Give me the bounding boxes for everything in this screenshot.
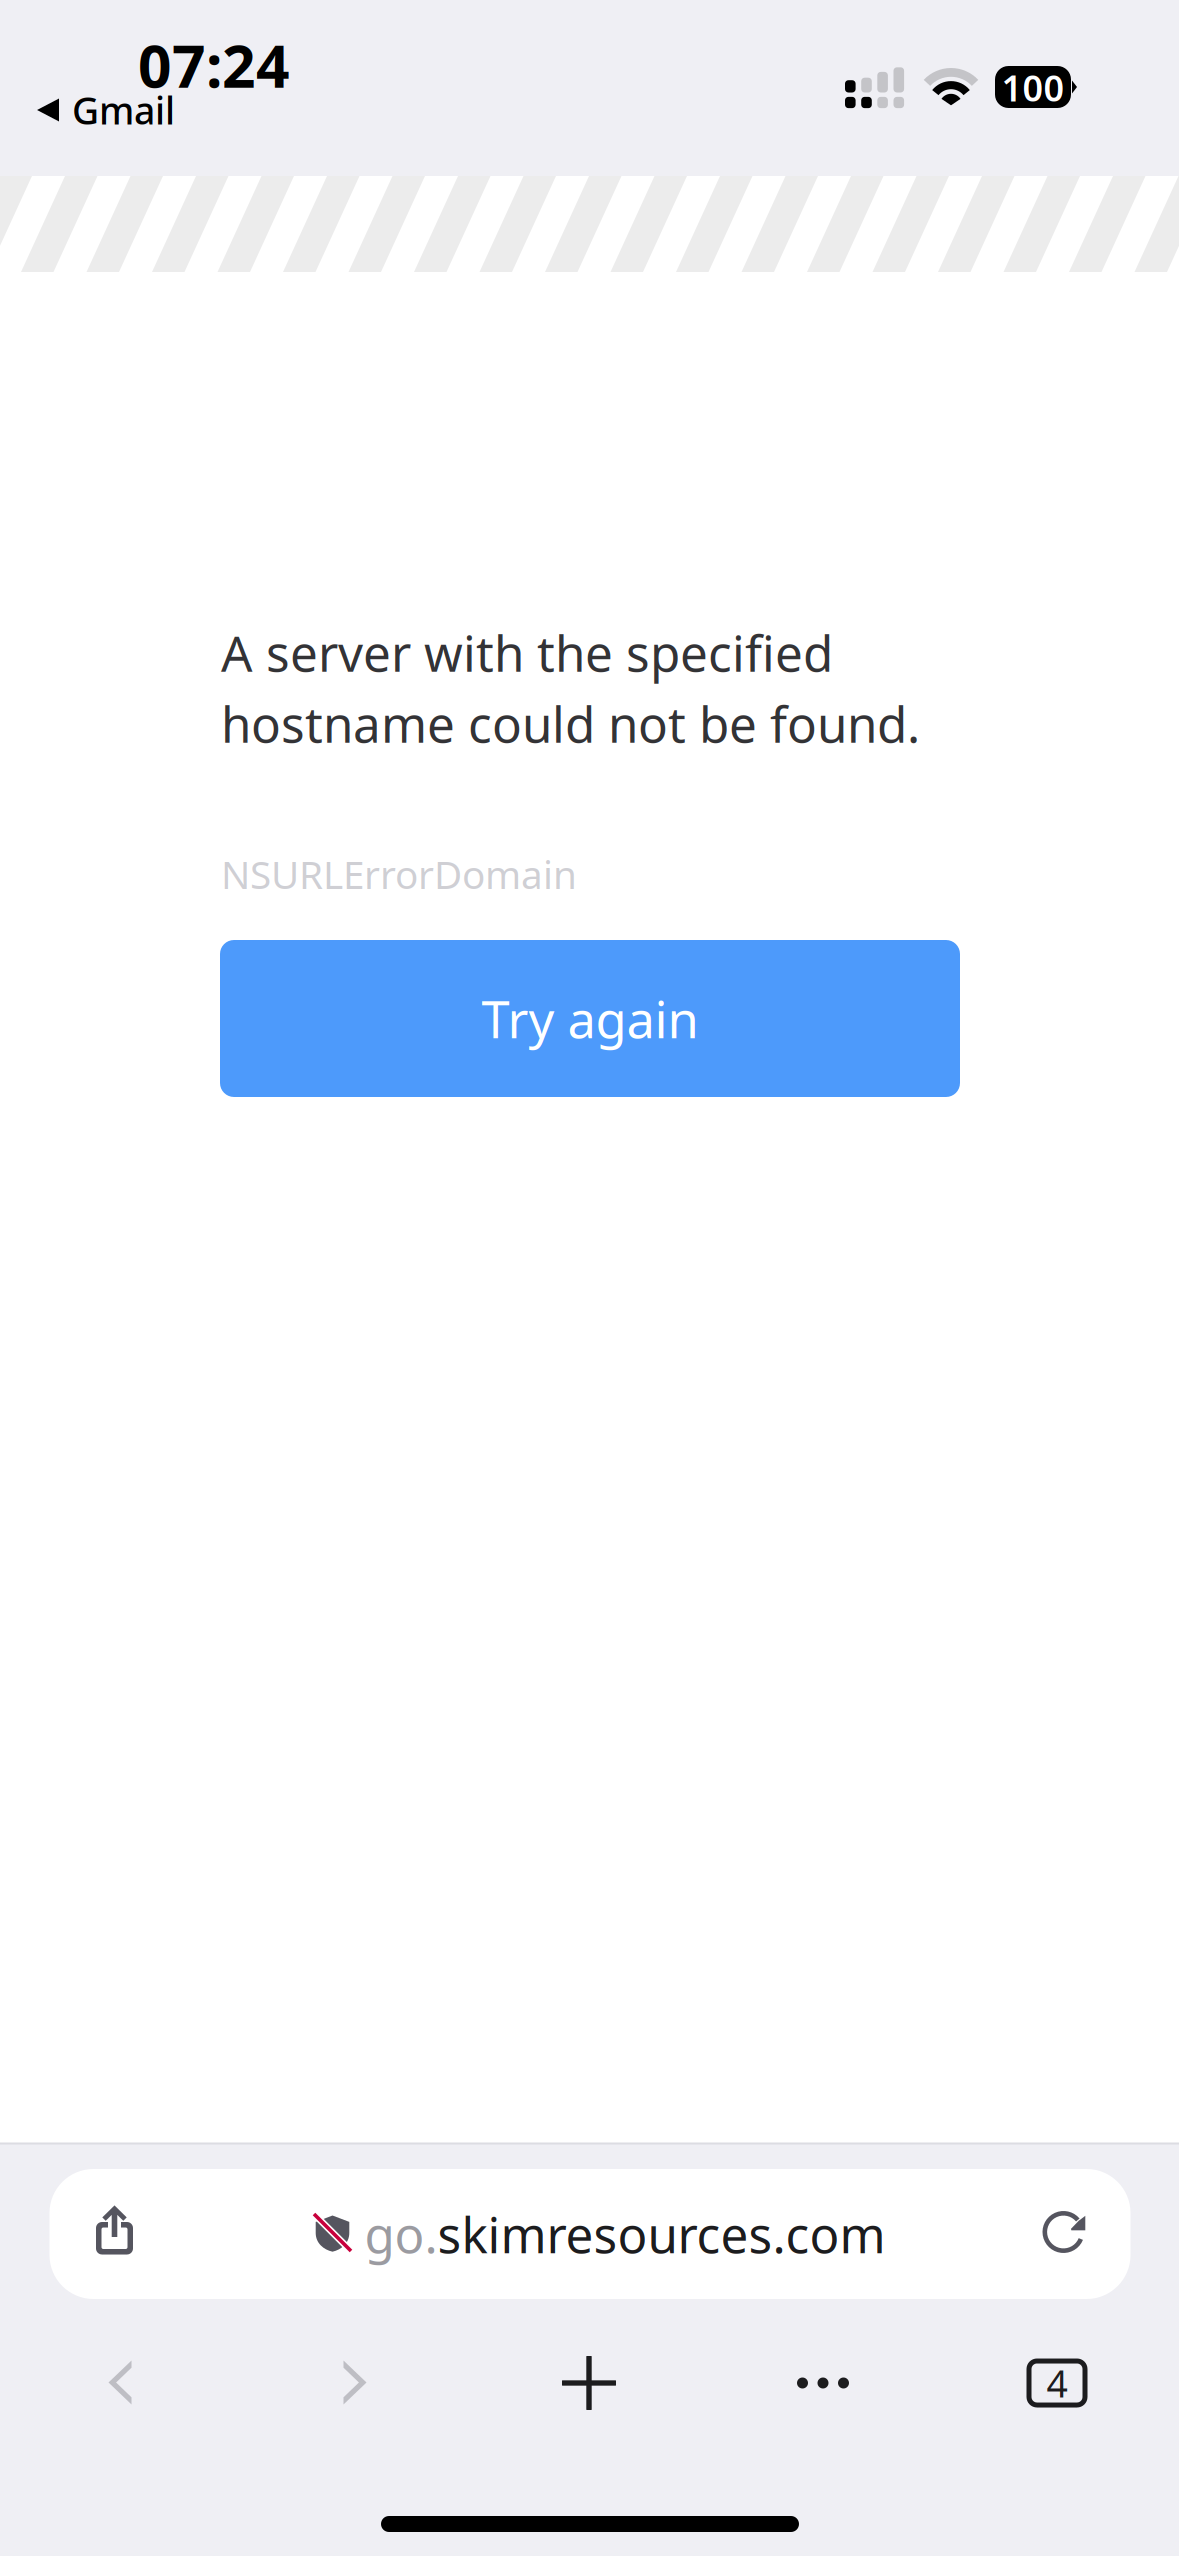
staticText: Gmail — [72, 85, 175, 135]
staticText: 07:24 — [138, 26, 290, 104]
button[interactable]: go. — [49, 2169, 1130, 2299]
staticText: NSURLErrorDomain — [221, 848, 577, 900]
button[interactable]: Tabs — [940, 2335, 1174, 2431]
staticText: hostname could not be found. — [221, 691, 920, 756]
staticText: A server with the specified — [221, 620, 833, 685]
button[interactable]: Back — [4, 2335, 238, 2431]
button[interactable]: New Tab — [472, 2335, 706, 2431]
staticText: Try again — [481, 985, 698, 1052]
button[interactable]: Forward — [238, 2335, 472, 2431]
button[interactable]: Try again — [220, 940, 960, 1097]
button[interactable]: Gmail — [25, 74, 187, 146]
staticText: 4 — [1046, 2358, 1067, 2408]
staticText: go. — [364, 2201, 437, 2267]
button[interactable]: Reload — [1004, 2167, 1124, 2297]
staticText: skimresources.com — [437, 2201, 885, 2267]
button[interactable]: More — [706, 2335, 940, 2431]
staticText: 100 — [1001, 64, 1064, 111]
button[interactable]: Share — [49, 2165, 179, 2295]
